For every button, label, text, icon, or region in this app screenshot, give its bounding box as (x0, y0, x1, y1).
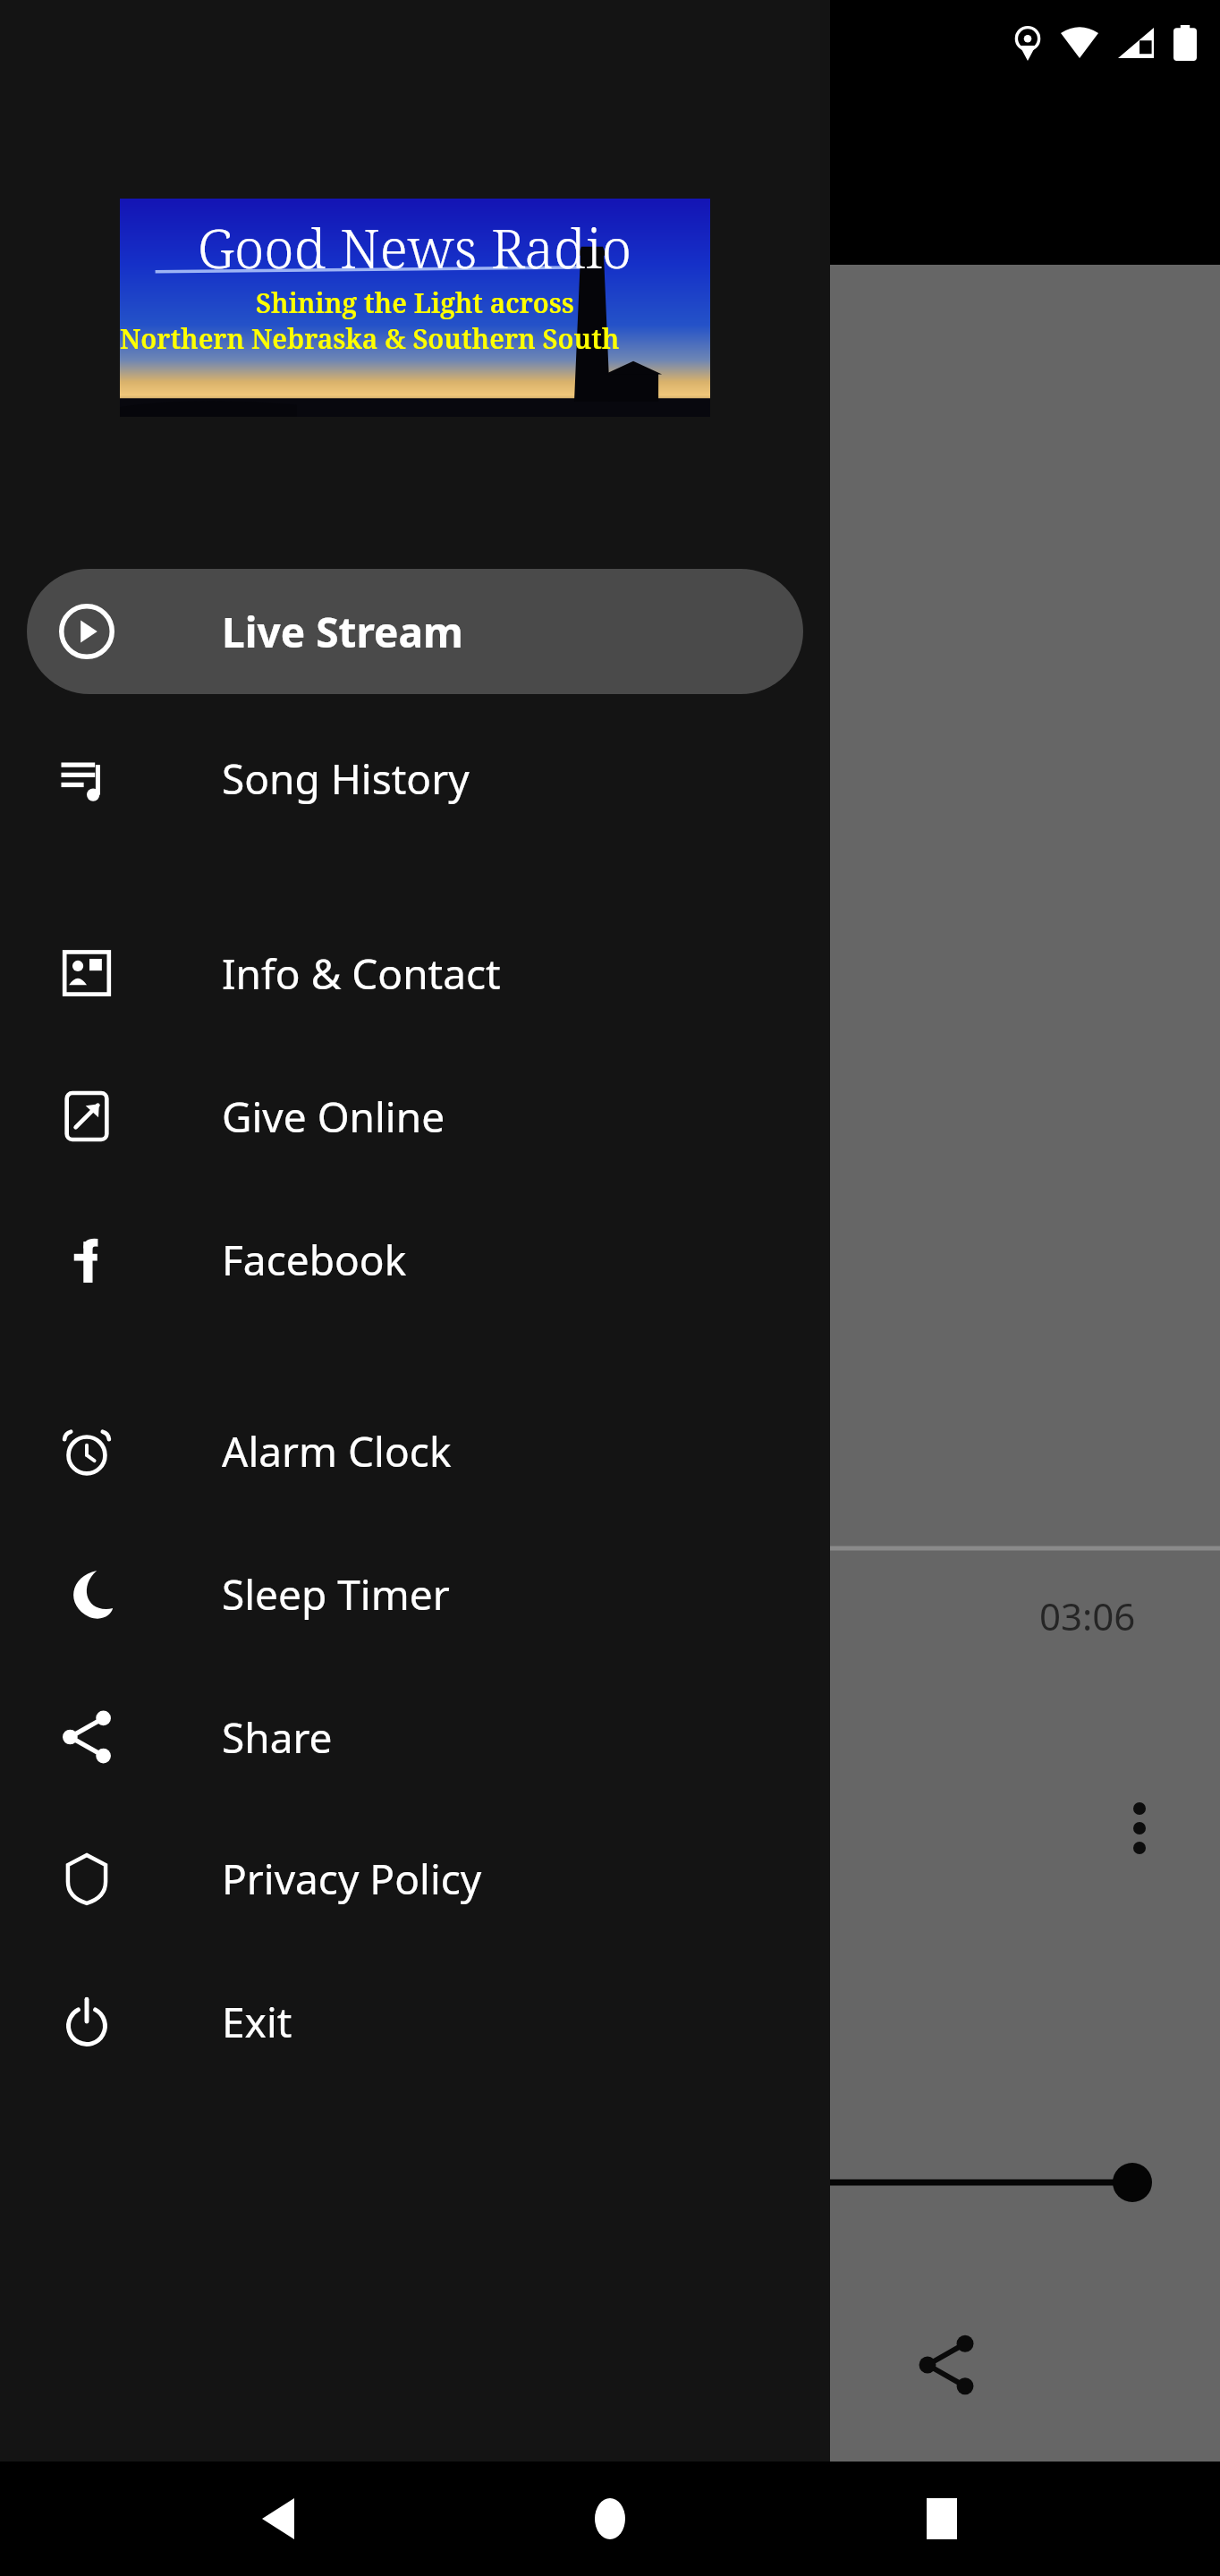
button[interactable]: Live Stream (27, 569, 803, 694)
staticText: 02:04 (68, 1590, 165, 1641)
staticText: Live Stream (222, 604, 463, 660)
button[interactable]: Info & Contact (0, 911, 830, 1036)
button[interactable]: Give Online (0, 1054, 830, 1179)
button[interactable]: Share (884, 2302, 1009, 2428)
staticText: Info & Contact (222, 945, 501, 1002)
staticText: Good News Radio (107, 136, 509, 202)
button[interactable]: Song History (0, 716, 830, 841)
staticText: Northern Nebraska & Southern South Dakot… (120, 320, 710, 357)
button[interactable]: Home (556, 2465, 664, 2572)
button[interactable]: Facebook (0, 1197, 830, 1322)
staticText: Exit (222, 1994, 292, 2050)
button[interactable]: More options (1093, 1782, 1186, 1875)
button[interactable]: Exit (0, 1959, 830, 2084)
staticText: Facebook (222, 1232, 407, 1288)
staticText: Give Online (222, 1089, 445, 1145)
staticText: Shining the Light across (256, 284, 574, 321)
button[interactable]: Sleep Timer (0, 1531, 830, 1657)
staticText: 03:06 (1039, 1590, 1136, 1641)
staticText: Alarm Clock (222, 1423, 452, 1479)
staticText: Song History (222, 750, 470, 807)
staticText: Share (222, 1709, 333, 1766)
staticText: Privacy Policy (222, 1851, 482, 1907)
button[interactable]: Privacy Policy (0, 1816, 830, 1941)
button[interactable]: Share (0, 1674, 830, 1800)
button[interactable]: Back (225, 2465, 332, 2572)
staticText: Sleep Timer (222, 1566, 450, 1623)
button[interactable]: Alarm Clock (0, 1388, 830, 1513)
button[interactable]: Recent apps (888, 2465, 995, 2572)
staticText: Good News Radio (198, 211, 632, 284)
